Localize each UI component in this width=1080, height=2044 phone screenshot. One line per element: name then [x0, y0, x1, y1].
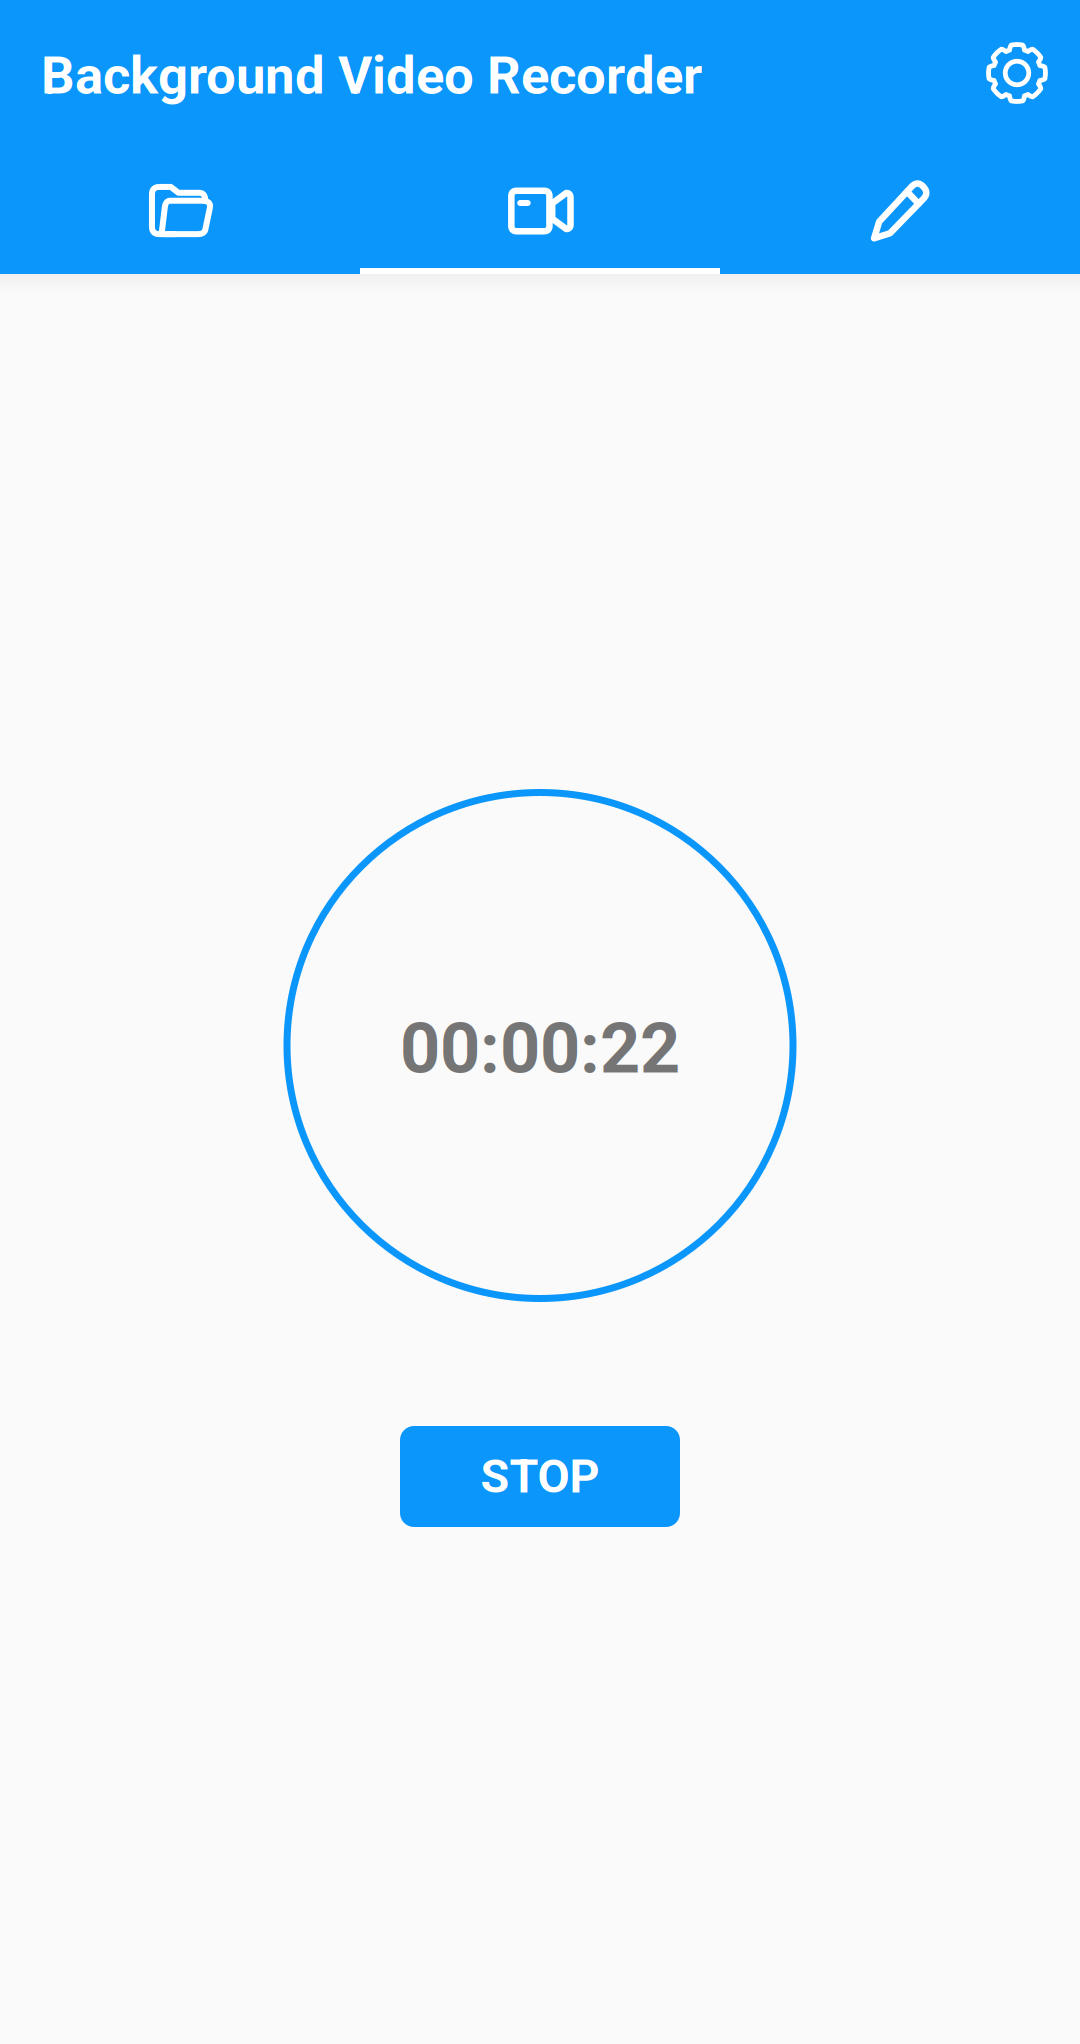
button[interactable]: Record	[360, 150, 720, 274]
button[interactable]: Edit	[720, 150, 1080, 274]
button[interactable]: STOP	[400, 1426, 680, 1527]
staticText: STOP	[480, 1449, 599, 1504]
staticText: 00:00:22	[400, 1007, 680, 1090]
button[interactable]: Recordings	[0, 150, 360, 274]
staticText: Background Video Recorder	[41, 45, 702, 106]
button[interactable]: Settings	[969, 27, 1065, 123]
